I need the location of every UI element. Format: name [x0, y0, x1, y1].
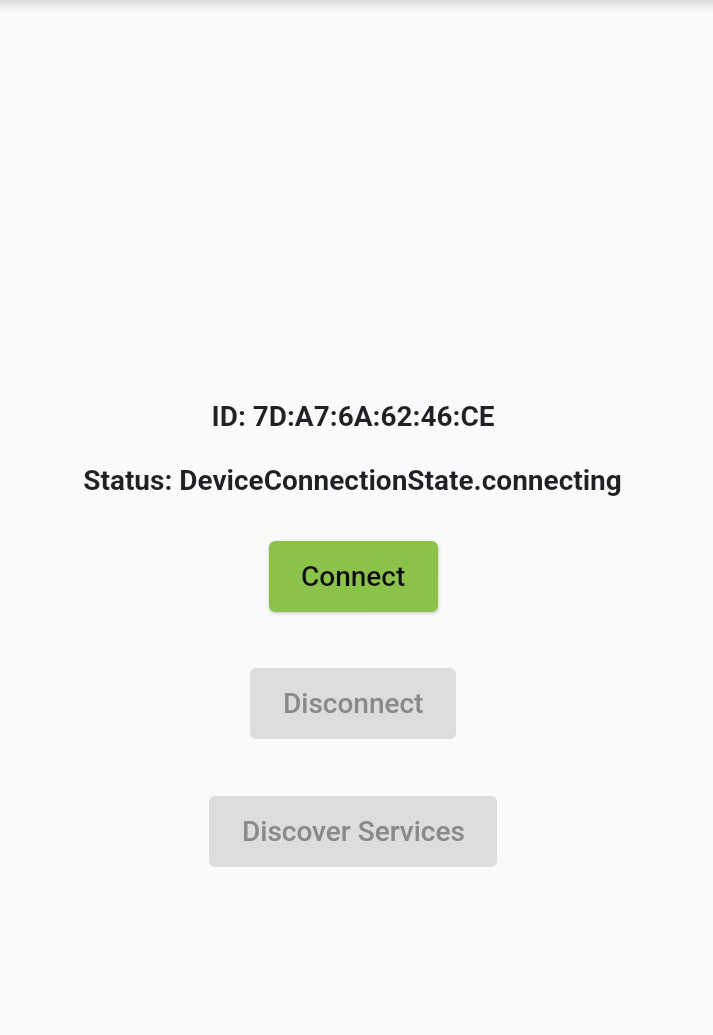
staticText: ID: 7D:A7:6A:62:46:CE [211, 400, 495, 433]
button[interactable]: Discover Services [209, 796, 497, 867]
staticText: Status: DeviceConnectionState.connecting [83, 464, 622, 497]
button[interactable]: Connect [269, 541, 438, 612]
staticText: Discover Services [242, 815, 465, 848]
staticText: Connect [301, 560, 406, 593]
button[interactable]: Disconnect [250, 668, 456, 739]
staticText: Disconnect [283, 687, 424, 720]
